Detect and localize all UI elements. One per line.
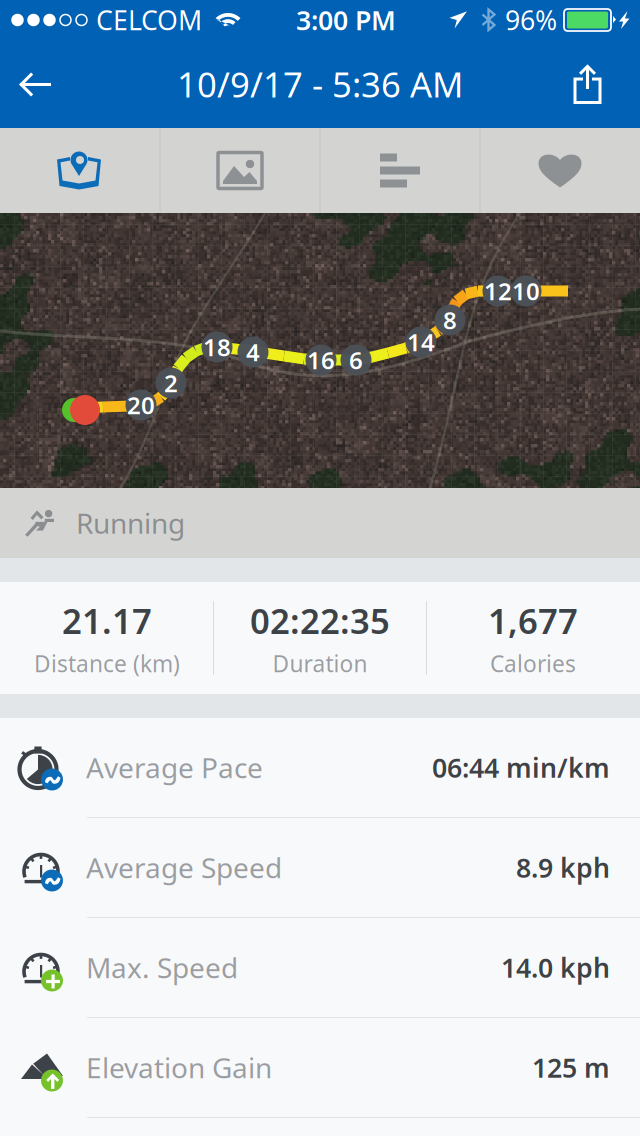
button[interactable]: Average Speed: [0, 818, 640, 918]
staticText: 2: [164, 367, 178, 399]
staticText: 18: [203, 331, 231, 363]
staticText: 125 m: [532, 1050, 610, 1085]
staticText: 10: [512, 275, 540, 307]
staticText: Distance (km): [34, 648, 180, 679]
staticText: 12: [484, 275, 512, 307]
button[interactable]: Average Pace: [0, 718, 640, 818]
staticText: 06:44 min/km: [432, 750, 610, 785]
staticText: 6: [349, 344, 363, 376]
staticText: 16: [307, 344, 335, 376]
staticText: Calories: [490, 648, 576, 679]
button[interactable]: Photos: [160, 128, 319, 213]
button[interactable]: Share: [550, 40, 640, 128]
staticText: 10/9/17 - 5:36 AM: [177, 61, 463, 107]
staticText: Running: [76, 504, 185, 542]
button[interactable]: Map: [0, 128, 159, 213]
button[interactable]: Charts: [320, 128, 479, 213]
staticText: 3:00 PM: [296, 2, 396, 38]
staticText: 21.17: [62, 597, 152, 643]
staticText: 14.0 kph: [501, 950, 610, 985]
staticText: Average Pace: [86, 749, 263, 786]
button[interactable]: Heart rate: [480, 128, 639, 213]
staticText: 96%: [505, 2, 557, 38]
staticText: 20: [127, 389, 155, 421]
staticText: 4: [246, 336, 260, 368]
staticText: 8.9 kph: [516, 850, 610, 885]
staticText: Elevation Gain: [86, 1049, 272, 1086]
staticText: Average Speed: [86, 849, 282, 886]
button[interactable]: Elevation Gain: [0, 1018, 640, 1118]
staticText: 14: [407, 326, 435, 358]
staticText: 1,677: [488, 597, 578, 643]
staticText: 02:22:35: [250, 597, 390, 643]
staticText: Max. Speed: [86, 949, 238, 986]
staticText: CELCOM: [96, 2, 202, 38]
button[interactable]: Max. Speed: [0, 918, 640, 1018]
staticText: Duration: [272, 648, 367, 679]
button[interactable]: Back: [0, 40, 70, 128]
staticText: 8: [443, 304, 457, 336]
